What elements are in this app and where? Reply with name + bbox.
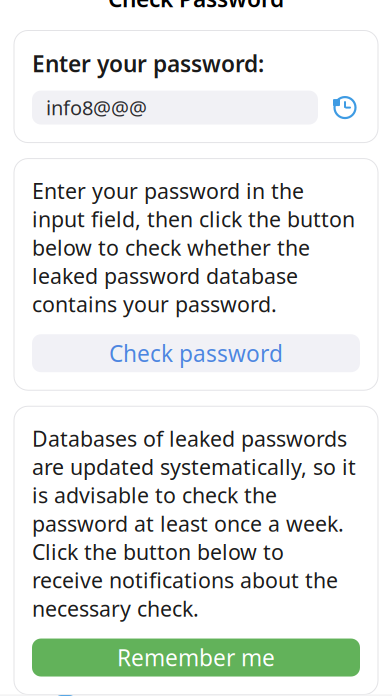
staticText: Enter your password: [32,48,264,79]
button[interactable]: Check [0,695,131,696]
staticText: Check Password [108,0,284,13]
button[interactable]: Remember me [32,638,360,676]
staticText: Enter your password in the input field, … [32,177,355,318]
staticText: info8@@@ [46,94,147,121]
staticText: Check password [109,338,283,368]
staticText: Databases of leaked passwords are update… [32,424,356,622]
button[interactable]: Check password [32,334,360,372]
staticText: Remember me [117,642,275,673]
button[interactable]: Password history [330,91,360,125]
